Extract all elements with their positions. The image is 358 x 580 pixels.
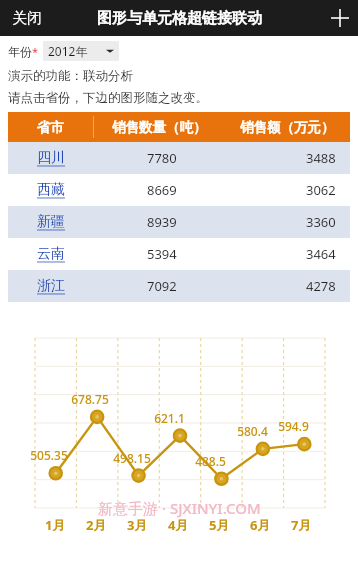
staticText: 图形与单元格超链接联动 (97, 9, 262, 28)
staticText: 505.35 (30, 447, 68, 463)
staticText: 4278 (306, 277, 336, 295)
staticText: 5月 (209, 516, 230, 534)
staticText: 4月 (168, 516, 189, 534)
staticText: 6月 (250, 516, 271, 534)
staticText: 3月 (127, 516, 148, 534)
staticText: 四川 (37, 149, 65, 167)
staticText: 演示的功能：联动分析 (8, 68, 133, 84)
button[interactable]: 关闭 (0, 3, 54, 34)
staticText: 621.1 (154, 410, 185, 426)
staticText: 西藏 (37, 181, 65, 199)
staticText: 3488 (306, 149, 336, 167)
staticText: 年份 (8, 44, 32, 59)
staticText: 2月 (86, 516, 107, 534)
staticText: 488.5 (195, 453, 226, 469)
staticText: * (32, 44, 39, 59)
staticText: 498.15 (113, 450, 151, 466)
button[interactable]: Add (322, 0, 358, 36)
button[interactable]: 西藏 (8, 174, 350, 206)
button[interactable]: 2012年 (43, 41, 119, 61)
staticText: 7780 (147, 149, 177, 167)
staticText: 7092 (147, 277, 177, 295)
staticText: 3360 (306, 213, 336, 231)
staticText: 销售额（万元） (240, 119, 335, 136)
staticText: 省市 (37, 119, 64, 136)
staticText: 594.9 (278, 418, 309, 434)
staticText: 8669 (147, 181, 177, 199)
staticText: 3062 (306, 181, 336, 199)
button[interactable]: 浙江 (8, 270, 350, 302)
staticText: 678.75 (71, 391, 109, 407)
staticText: 7月 (291, 516, 312, 534)
staticText: 云南 (37, 245, 65, 263)
staticText: 8939 (147, 213, 177, 231)
staticText: 新意手游 · SJXINYI.COM (98, 498, 261, 518)
staticText: 新疆 (37, 213, 65, 231)
staticText: 关闭 (12, 9, 42, 28)
staticText: 3464 (306, 245, 336, 263)
staticText: 浙江 (37, 277, 65, 295)
button[interactable]: 四川 (8, 142, 350, 174)
staticText: 销售数量（吨） (112, 119, 207, 136)
staticText: 请点击省份，下边的图形随之改变。 (8, 90, 208, 106)
button[interactable]: 新疆 (8, 206, 350, 238)
staticText: 2012年 (48, 43, 88, 59)
staticText: 580.4 (237, 423, 268, 439)
button[interactable]: 云南 (8, 238, 350, 270)
staticText: 1月 (45, 516, 66, 534)
staticText: 5394 (147, 245, 177, 263)
